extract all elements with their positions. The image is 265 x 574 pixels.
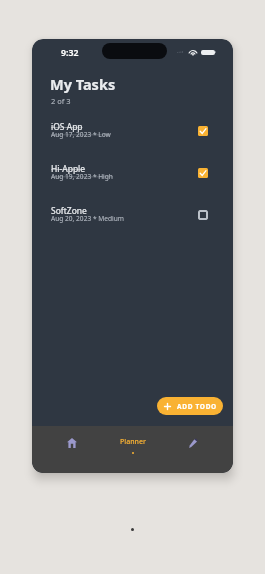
staticText: SoftZone <box>51 205 87 217</box>
button[interactable]: Hi-Apple <box>51 163 208 187</box>
staticText: 2 of 3 <box>51 96 71 106</box>
staticText: iOS App <box>51 121 83 133</box>
staticText: Aug 19, 2023 * High <box>51 172 113 181</box>
button[interactable]: Task completed <box>198 126 208 136</box>
button[interactable]: Home <box>32 426 99 473</box>
staticText: 9:32 <box>61 47 79 59</box>
button[interactable]: SoftZone <box>51 205 208 229</box>
button[interactable]: Task completed <box>198 168 208 178</box>
staticText: Aug 20, 2023 * Medium <box>51 214 124 223</box>
staticText: ADD TODO <box>177 402 217 411</box>
button[interactable]: Mark complete <box>198 210 208 220</box>
button[interactable]: ADD TODO <box>157 397 223 415</box>
staticText: My Tasks <box>50 74 116 94</box>
staticText: Hi-Apple <box>51 163 86 175</box>
button[interactable]: Planner <box>99 426 166 473</box>
button[interactable]: Edit <box>166 426 233 473</box>
staticText: Aug 17, 2023 * Low <box>51 130 111 139</box>
staticText: Planner <box>120 437 146 447</box>
button[interactable]: iOS App <box>51 121 208 145</box>
